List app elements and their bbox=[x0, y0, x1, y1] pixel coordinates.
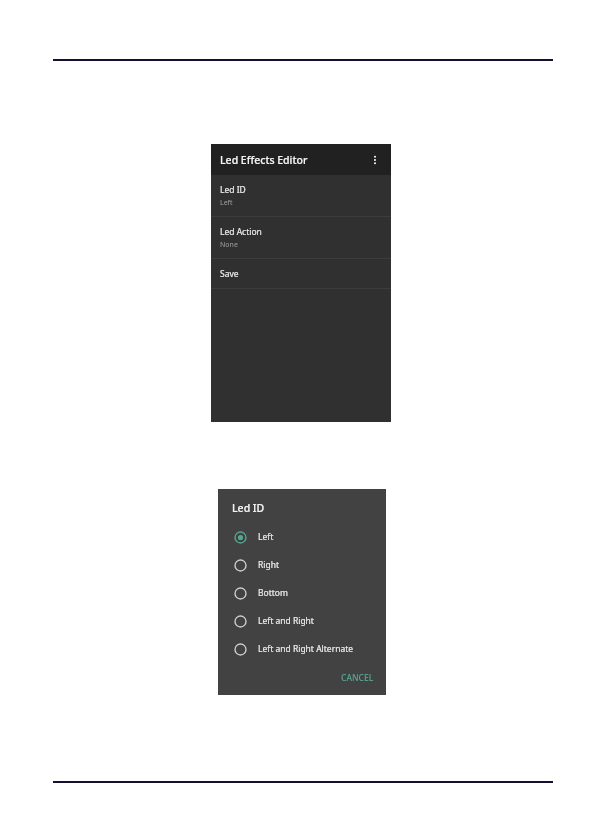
staticText: Led Effects Editor bbox=[220, 153, 308, 167]
button[interactable]: More options bbox=[363, 148, 387, 172]
staticText: None bbox=[220, 240, 238, 250]
button[interactable]: Left and Right bbox=[218, 607, 386, 635]
staticText: Led ID bbox=[232, 501, 265, 515]
staticText: Led ID bbox=[220, 184, 246, 196]
button[interactable]: Left and Right Alternate bbox=[218, 635, 386, 663]
button[interactable]: CANCEL bbox=[329, 667, 386, 689]
staticText: Left and Right bbox=[258, 615, 314, 627]
button[interactable]: Right bbox=[218, 551, 386, 579]
staticText: Left bbox=[258, 531, 274, 543]
staticText: Left and Right Alternate bbox=[258, 643, 354, 655]
staticText: Save bbox=[220, 268, 239, 280]
button[interactable]: Led ID bbox=[211, 175, 391, 216]
button[interactable]: Bottom bbox=[218, 579, 386, 607]
staticText: Led Action bbox=[220, 226, 262, 238]
button[interactable]: Led Action bbox=[211, 217, 391, 258]
staticText: CANCEL bbox=[341, 672, 374, 684]
button[interactable]: Left bbox=[218, 523, 386, 551]
staticText: Right bbox=[258, 559, 280, 571]
button[interactable]: Save bbox=[211, 259, 391, 288]
staticText: Left bbox=[220, 198, 233, 208]
staticText: Bottom bbox=[258, 587, 288, 599]
